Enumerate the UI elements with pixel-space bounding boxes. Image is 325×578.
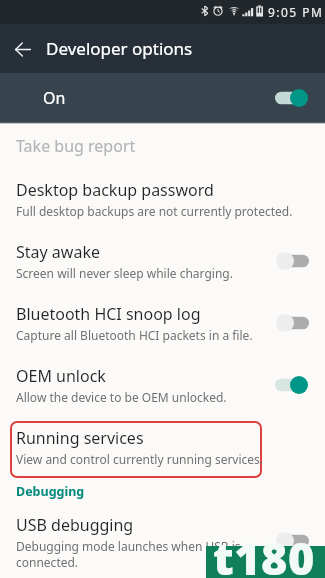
staticText: View and control currently running servi… xyxy=(16,451,264,467)
button[interactable]: Toggle off xyxy=(275,531,309,551)
staticText: Developer options xyxy=(46,37,193,60)
staticText: t180 xyxy=(213,527,315,578)
staticText: Take bug report xyxy=(16,135,136,157)
button[interactable]: Toggle on xyxy=(275,375,309,395)
button[interactable]: Toggle on xyxy=(275,88,309,108)
staticText: Debugging xyxy=(16,483,85,500)
button[interactable]: Desktop backup password xyxy=(0,168,325,230)
staticText: 9:05 PM xyxy=(268,4,324,20)
button[interactable]: OEM unlock xyxy=(0,354,325,416)
staticText: USB debugging xyxy=(16,514,134,536)
button[interactable]: On xyxy=(0,73,325,122)
staticText: Allow the device to be OEM unlocked. xyxy=(16,389,227,405)
button[interactable]: USB debugging xyxy=(0,503,325,578)
button[interactable]: Running services xyxy=(0,416,325,478)
staticText: Debugging mode launches when USB is conn… xyxy=(16,538,275,567)
staticText: Stay awake xyxy=(16,241,100,263)
button[interactable]: Stay awake xyxy=(0,230,325,292)
staticText: OEM unlock xyxy=(16,365,106,387)
staticText: Bluetooth HCI snoop log xyxy=(16,303,201,325)
staticText: Desktop backup password xyxy=(16,179,214,201)
button[interactable]: Bluetooth HCI snoop log xyxy=(0,292,325,354)
staticText: Full desktop backups are not currently p… xyxy=(16,203,293,219)
staticText: On xyxy=(43,87,66,109)
button[interactable]: Take bug report xyxy=(0,124,325,168)
button[interactable]: Toggle off xyxy=(275,313,309,333)
button[interactable]: Toggle off xyxy=(275,251,309,271)
staticText: Capture all Bluetooth HCI packets in a f… xyxy=(16,327,253,343)
staticText: Screen will never sleep while charging. xyxy=(16,265,233,281)
staticText: Running services xyxy=(16,427,144,449)
button[interactable]: Navigate up xyxy=(6,32,40,66)
